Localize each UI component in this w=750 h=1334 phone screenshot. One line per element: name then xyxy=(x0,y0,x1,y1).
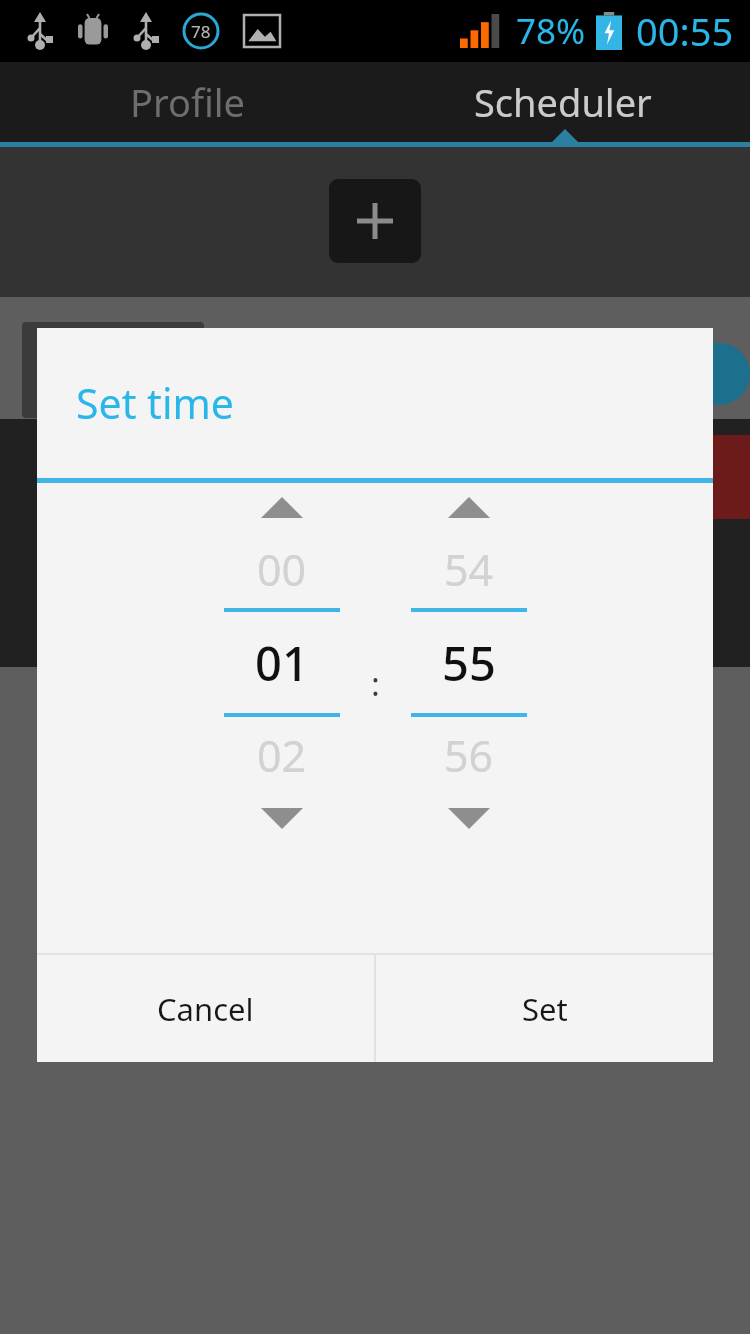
staticText: Scheduler xyxy=(474,76,652,128)
staticText: Set xyxy=(522,988,568,1030)
staticText: 54 xyxy=(444,540,494,599)
staticText: Cancel xyxy=(157,988,254,1030)
button[interactable]: Scheduler xyxy=(375,62,750,142)
button[interactable]: Increase minute xyxy=(411,483,527,531)
button[interactable]: Decrease minute xyxy=(411,794,527,842)
staticText: 56 xyxy=(444,726,494,785)
button[interactable] xyxy=(22,322,204,418)
button[interactable]: Profile xyxy=(0,62,375,142)
staticText: 78 xyxy=(191,20,211,43)
staticText: 78% xyxy=(516,7,586,55)
staticText: : xyxy=(371,661,380,706)
button[interactable]: Decrease hour xyxy=(224,794,340,842)
button[interactable]: Add schedule xyxy=(329,179,421,263)
button[interactable]: Cancel xyxy=(37,955,374,1062)
staticText: 00:55 xyxy=(636,5,734,57)
button[interactable]: 55 xyxy=(411,612,527,713)
staticText: Set time xyxy=(76,375,234,431)
button[interactable]: Increase hour xyxy=(224,483,340,531)
staticText: Profile xyxy=(130,76,246,128)
button[interactable]: Set xyxy=(376,955,713,1062)
staticText: 01 xyxy=(255,631,309,695)
button[interactable]: 01 xyxy=(224,612,340,713)
staticText: 02 xyxy=(257,726,307,785)
staticText: 55 xyxy=(442,631,496,695)
button[interactable] xyxy=(700,435,750,519)
staticText: 00 xyxy=(257,540,307,599)
